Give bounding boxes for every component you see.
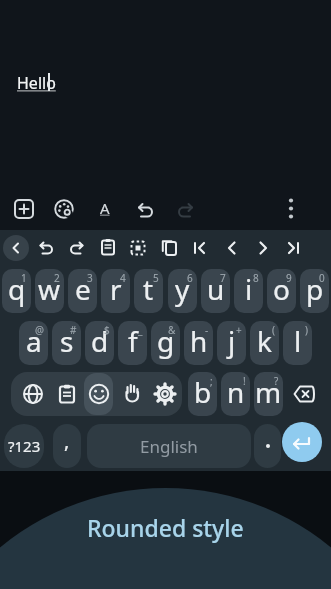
staticText: 0	[319, 271, 325, 285]
button[interactable]: m	[254, 372, 283, 416]
staticText: p	[306, 270, 324, 308]
staticText: q	[8, 270, 26, 308]
staticText: $	[104, 323, 110, 337]
button[interactable]: p	[300, 269, 329, 313]
staticText: @	[35, 323, 44, 337]
staticText: k	[257, 322, 272, 360]
staticText: English	[140, 435, 198, 458]
button[interactable]: j	[217, 321, 246, 365]
button[interactable]	[282, 422, 322, 462]
button[interactable]: e	[68, 269, 97, 313]
staticText: _	[138, 323, 143, 337]
button[interactable]	[129, 239, 147, 257]
button[interactable]: g	[151, 321, 180, 365]
button[interactable]: b	[188, 372, 217, 416]
button[interactable]	[99, 238, 117, 256]
staticText: l	[294, 322, 302, 360]
button[interactable]: t	[134, 269, 163, 313]
button[interactable]	[121, 382, 143, 404]
staticText: o	[273, 270, 290, 308]
staticText: y	[175, 270, 190, 308]
button[interactable]: s	[52, 321, 81, 365]
button[interactable]	[292, 383, 316, 407]
staticText: a	[26, 322, 42, 360]
button[interactable]: ?123	[4, 424, 44, 468]
button[interactable]	[135, 200, 155, 220]
button[interactable]	[160, 238, 178, 256]
staticText: +	[236, 323, 242, 337]
button[interactable]: A	[96, 198, 114, 220]
staticText: b	[194, 373, 212, 411]
staticText: 7	[220, 271, 226, 285]
staticText: ?	[274, 374, 279, 388]
staticText: s	[60, 322, 74, 360]
staticText: ,	[64, 427, 70, 454]
staticText: g	[157, 322, 175, 360]
button[interactable]	[84, 373, 113, 415]
button[interactable]: d	[85, 321, 114, 365]
staticText: 4	[120, 271, 126, 285]
button[interactable]	[284, 198, 298, 212]
staticText: e	[75, 270, 91, 308]
button[interactable]	[0, 471, 331, 589]
button[interactable]: k	[250, 321, 279, 365]
button[interactable]: r	[101, 269, 130, 313]
staticText: w	[38, 270, 61, 308]
button[interactable]: u	[201, 269, 230, 313]
button[interactable]	[54, 199, 74, 219]
staticText: Hello	[17, 72, 56, 94]
staticText: 2	[54, 271, 60, 285]
button[interactable]	[9, 241, 23, 255]
button[interactable]: h	[184, 321, 213, 365]
button[interactable]	[22, 383, 44, 405]
staticText: 3	[87, 271, 93, 285]
staticText: d	[91, 322, 109, 360]
staticText: m	[255, 373, 282, 411]
button[interactable]	[255, 240, 271, 256]
staticText: !	[243, 374, 246, 388]
button[interactable]: a	[19, 321, 48, 365]
button[interactable]: ,	[53, 424, 81, 468]
button[interactable]: English	[87, 424, 251, 468]
staticText: 5	[153, 271, 159, 285]
button[interactable]	[56, 383, 78, 405]
button[interactable]	[154, 383, 176, 405]
button[interactable]	[14, 199, 34, 219]
staticText: j	[228, 322, 236, 360]
staticText: 8	[253, 271, 259, 285]
button[interactable]: w	[35, 269, 64, 313]
staticText: )	[305, 323, 308, 337]
staticText: (	[272, 323, 275, 337]
staticText: &	[168, 323, 176, 337]
staticText: n	[227, 373, 245, 411]
button[interactable]: q	[2, 269, 31, 313]
button[interactable]	[68, 239, 86, 257]
button[interactable]: i	[234, 269, 263, 313]
button[interactable]: o	[267, 269, 296, 313]
staticText: ?123	[8, 436, 41, 456]
staticText: #	[70, 323, 77, 337]
staticText: i	[245, 270, 253, 308]
staticText: A	[100, 198, 110, 218]
staticText: -	[205, 323, 209, 337]
staticText: ;	[210, 374, 213, 388]
button[interactable]	[284, 240, 302, 258]
staticText: 9	[286, 271, 292, 285]
button[interactable]	[176, 200, 196, 220]
staticText: h	[190, 322, 208, 360]
staticText: f	[128, 322, 138, 360]
button[interactable]: f	[118, 321, 147, 365]
button[interactable]	[254, 424, 281, 468]
button[interactable]: l	[283, 321, 312, 365]
button[interactable]	[3, 235, 29, 261]
staticText: u	[207, 270, 225, 308]
staticText: 1	[21, 271, 27, 285]
button[interactable]	[224, 240, 240, 256]
button[interactable]: y	[168, 269, 197, 313]
button[interactable]	[191, 240, 209, 258]
button[interactable]: n	[221, 372, 250, 416]
button[interactable]	[88, 383, 110, 405]
staticText: r	[110, 270, 122, 308]
staticText: Rounded style	[87, 512, 244, 543]
button[interactable]	[37, 239, 55, 257]
